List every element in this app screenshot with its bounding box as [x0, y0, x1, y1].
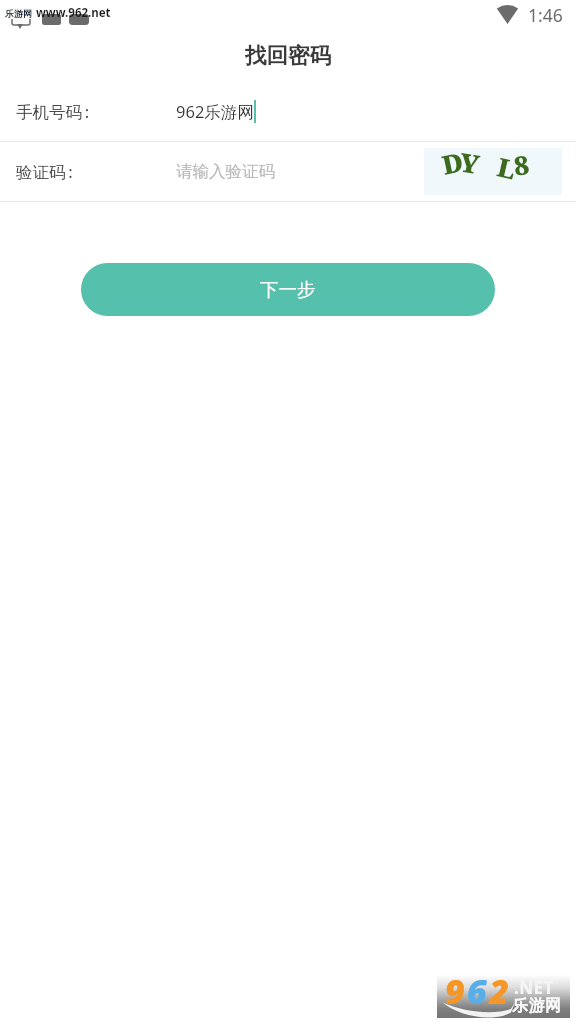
staticText: 962乐游网: [176, 100, 254, 123]
staticText: Y: [457, 144, 483, 181]
staticText: 找回密码: [245, 42, 331, 69]
button[interactable]: 下一步: [81, 263, 495, 316]
button[interactable]: Refresh captcha image: [424, 148, 562, 195]
staticText: 乐游网: [512, 996, 562, 1016]
staticText: 乐游网: [5, 8, 32, 19]
staticText: .NET: [514, 976, 554, 999]
staticText: 请输入验证码: [176, 161, 275, 182]
staticText: 验证码 :: [16, 160, 73, 183]
button[interactable]: 手机号码 :: [0, 81, 576, 141]
staticText: L: [494, 148, 520, 187]
staticText: www.962.net: [36, 5, 111, 21]
staticText: 手机号码 :: [16, 100, 90, 123]
staticText: D: [439, 143, 466, 182]
staticText: 962: [445, 968, 512, 1011]
staticText: 1:46: [528, 3, 563, 27]
staticText: 下一步: [260, 278, 316, 301]
staticText: 8: [512, 146, 531, 183]
button[interactable]: 请输入验证码: [176, 161, 424, 182]
